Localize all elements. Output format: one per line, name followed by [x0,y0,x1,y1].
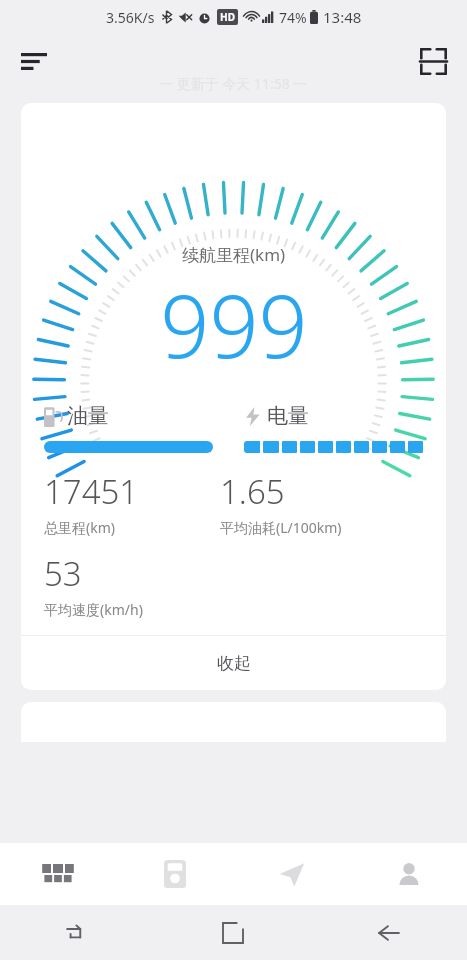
staticText: 3.56K/s [106,8,155,27]
staticText: 电量 [267,403,309,429]
staticText: 74% [279,8,307,27]
staticText: HD [220,10,235,24]
button[interactable]: Back [311,905,467,960]
button[interactable]: Recents [0,905,155,960]
button[interactable]: Menu [10,37,58,85]
staticText: 平均速度(km/h) [44,600,143,619]
staticText: 平均油耗(L/100km) [220,518,342,537]
button[interactable]: Navigate [233,843,350,905]
staticText: 13:48 [323,7,362,27]
staticText: 油量 [67,403,109,429]
staticText: 17451 [44,469,139,514]
staticText: 收起 [217,653,251,674]
button[interactable]: Home [155,905,311,960]
staticText: 1.65 [220,469,285,514]
button[interactable]: Profile [350,843,467,905]
staticText: 续航里程(km) [182,243,286,266]
button[interactable]: 收起 [21,636,446,690]
staticText: 53 [44,551,82,596]
button[interactable]: Scan [409,37,457,85]
staticText: 一 更新于 今天 11:58 一 [159,74,308,93]
staticText: 999 [160,266,308,383]
staticText: 总里程(km) [44,518,115,537]
button[interactable]: Vehicle [0,843,116,905]
button[interactable]: Control [116,843,233,905]
